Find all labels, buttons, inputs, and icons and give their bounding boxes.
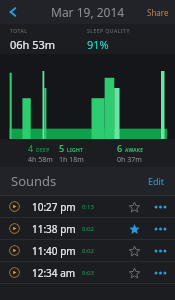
staticText: 0h 37m (117, 155, 142, 165)
staticText: Mar 19, 2014 (51, 4, 125, 20)
staticText: TOTAL (10, 28, 28, 35)
staticText: 4 (28, 142, 34, 154)
staticText: 10:27 pm (32, 200, 76, 214)
staticText: 0:02 (82, 225, 94, 233)
button[interactable]: Play (9, 267, 20, 278)
staticText: DEEP (36, 147, 50, 154)
button[interactable]: More options (150, 197, 170, 217)
staticText: 5 (59, 142, 65, 154)
button[interactable]: Back (0, 0, 26, 24)
staticText: 12:34 am (32, 266, 76, 280)
staticText: 0:02 (82, 247, 94, 255)
staticText: 06h 53m (10, 37, 56, 52)
staticText: 0:13 (82, 203, 94, 211)
staticText: 1h 18m (59, 155, 84, 165)
staticText: 11:38 pm (32, 222, 76, 236)
button[interactable]: Favourite (126, 221, 142, 237)
staticText: 4h 58m (28, 155, 53, 165)
button[interactable]: Play (0, 196, 175, 217)
staticText: 6 (117, 142, 123, 154)
button[interactable]: Play (0, 240, 175, 261)
staticText: 91% (87, 37, 109, 52)
button[interactable]: Play (0, 262, 175, 283)
button[interactable]: Play (9, 245, 20, 256)
button[interactable]: Share (147, 7, 169, 18)
button[interactable]: Favourite (126, 199, 142, 215)
staticText: Sounds (11, 172, 57, 190)
staticText: Edit (148, 175, 165, 187)
button[interactable]: More options (150, 219, 170, 239)
button[interactable]: More options (150, 263, 170, 283)
staticText: SLEEP QUALITY (87, 28, 130, 35)
button[interactable]: Favourite (126, 243, 142, 259)
button[interactable]: Play (9, 201, 20, 212)
button[interactable]: Edit (148, 175, 165, 187)
button[interactable]: Favourite (126, 265, 142, 281)
staticText: AWAKE (125, 147, 144, 154)
button[interactable]: Play (0, 218, 175, 239)
button[interactable]: Play (9, 223, 20, 234)
staticText: Share (147, 7, 169, 18)
staticText: 11:40 pm (32, 244, 76, 258)
staticText: LIGHT (67, 147, 84, 154)
staticText: 0:03 (82, 269, 94, 277)
button[interactable]: More options (150, 241, 170, 261)
